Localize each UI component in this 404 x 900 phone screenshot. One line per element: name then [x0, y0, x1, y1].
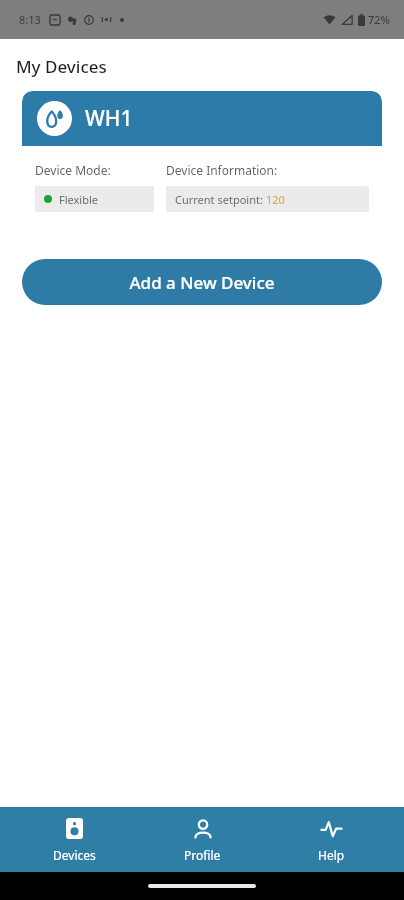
button[interactable]: Add a New Device [22, 259, 382, 305]
button[interactable]: Current setpoint: [166, 186, 369, 212]
staticText: Flexible [59, 192, 98, 207]
staticText: Add a New Device [129, 271, 275, 294]
staticText: Device Mode: [35, 162, 111, 178]
button[interactable]: Help [276, 811, 386, 869]
button[interactable]: Profile [147, 811, 257, 869]
staticText: Profile [184, 847, 221, 863]
staticText: 120 [266, 192, 285, 207]
staticText: Help [318, 847, 345, 863]
staticText: WH1 [85, 104, 133, 133]
button[interactable]: WH1 [22, 91, 382, 226]
staticText: Device Information: [166, 162, 278, 178]
staticText: 8:13 [19, 12, 41, 27]
staticText: My Devices [16, 55, 107, 78]
staticText: Devices [53, 847, 96, 863]
button[interactable]: Flexible [35, 186, 154, 212]
button[interactable]: Devices [19, 811, 129, 869]
staticText: 72% [368, 12, 390, 27]
staticText: Current setpoint: [175, 192, 266, 207]
